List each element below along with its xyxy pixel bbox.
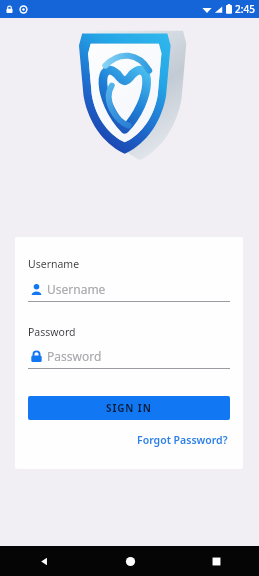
button[interactable]: Password xyxy=(28,348,230,369)
staticText: Password xyxy=(28,325,76,339)
staticText: Forgot Password? xyxy=(137,433,228,447)
button[interactable]: Home xyxy=(117,548,143,574)
other: Password xyxy=(30,350,43,363)
staticText: SIGN IN xyxy=(106,401,152,415)
button[interactable]: SIGN IN xyxy=(28,396,230,420)
staticText: 2:45 xyxy=(235,2,255,16)
staticText: Username xyxy=(28,257,80,271)
button[interactable]: Forgot Password? xyxy=(135,431,230,449)
staticText: Password xyxy=(47,348,102,364)
staticText: Username xyxy=(47,281,106,297)
button[interactable]: Username xyxy=(28,281,230,302)
button[interactable]: Back xyxy=(31,548,57,574)
button[interactable]: Recent apps xyxy=(203,548,229,574)
other: Username xyxy=(30,283,43,296)
